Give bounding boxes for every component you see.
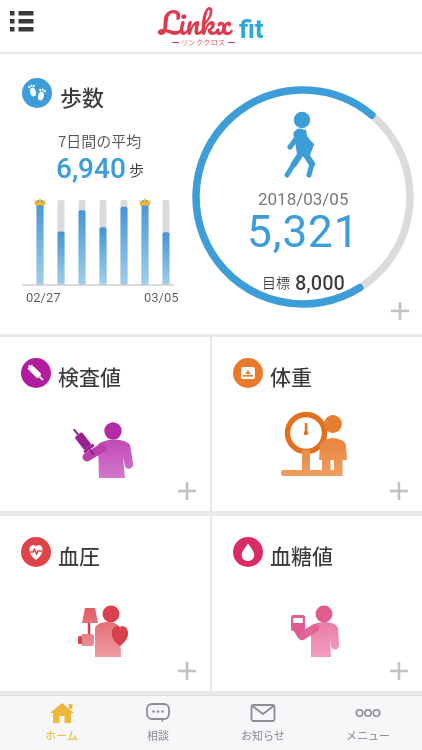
- button[interactable]: 相談: [105, 696, 210, 750]
- button[interactable]: お知らせ: [210, 696, 315, 750]
- button[interactable]: 血圧: [0, 516, 210, 691]
- staticText: 検査値: [58, 361, 121, 391]
- staticText: リンククロス: [179, 37, 228, 47]
- staticText: ホーム: [45, 727, 78, 743]
- staticText: 2018/03/05: [258, 189, 349, 209]
- button[interactable]: 歩数: [0, 54, 422, 334]
- staticText: Linkx: [159, 0, 233, 48]
- button[interactable]: [10, 10, 36, 34]
- staticText: 体重: [270, 361, 312, 391]
- button[interactable]: ホーム: [9, 696, 114, 750]
- staticText: メニュー: [346, 727, 390, 743]
- button[interactable]: 血糖値: [212, 516, 422, 691]
- button[interactable]: [178, 662, 196, 680]
- button[interactable]: [390, 482, 408, 500]
- button[interactable]: 体重: [212, 337, 422, 511]
- staticText: 相談: [147, 727, 169, 743]
- button[interactable]: [390, 662, 408, 680]
- staticText: 6,940: [56, 152, 126, 185]
- button[interactable]: 検査値: [0, 337, 210, 511]
- staticText: 5,321: [247, 206, 360, 258]
- staticText: 7日間の平均: [58, 130, 142, 152]
- staticText: 03/05: [144, 290, 179, 305]
- staticText: 目標: [262, 272, 290, 292]
- staticText: 8,000: [295, 271, 345, 294]
- button[interactable]: [391, 302, 409, 320]
- button[interactable]: Linkx: [159, 0, 264, 48]
- staticText: 血圧: [58, 540, 100, 570]
- staticText: 血糖値: [270, 540, 333, 570]
- staticText: 歩: [129, 159, 145, 181]
- button[interactable]: メニュー: [315, 696, 420, 750]
- staticText: お知らせ: [241, 727, 285, 743]
- staticText: 歩数: [60, 80, 105, 112]
- staticText: 02/27: [26, 290, 61, 305]
- button[interactable]: [178, 482, 196, 500]
- staticText: fit: [239, 14, 264, 44]
